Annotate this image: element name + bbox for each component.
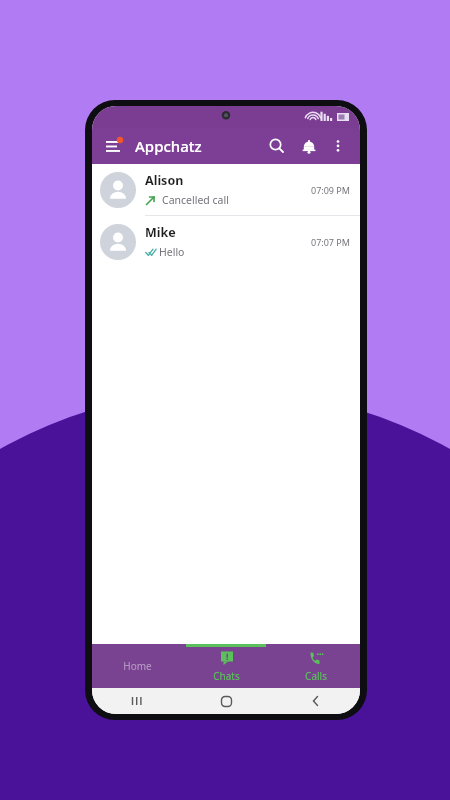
button[interactable]: Back	[271, 688, 360, 714]
button[interactable]: Search	[264, 133, 290, 159]
staticText: 07:07 PM	[311, 236, 350, 248]
button[interactable]: More options	[326, 134, 350, 158]
staticText: Home	[123, 659, 152, 673]
button[interactable]: Alison	[92, 164, 360, 215]
button[interactable]: Open navigation menu	[102, 134, 126, 158]
button[interactable]: Recent apps	[92, 688, 182, 714]
staticText: Alison	[145, 172, 184, 189]
button[interactable]: Chats	[182, 644, 271, 688]
button[interactable]: Home	[182, 688, 271, 714]
button[interactable]: Home	[92, 644, 182, 688]
staticText: Chats	[213, 669, 240, 683]
staticText: Mike	[145, 224, 176, 241]
staticText: Hello	[159, 245, 185, 259]
staticText: 07:09 PM	[311, 184, 350, 196]
button[interactable]: Mike	[92, 216, 360, 267]
staticText: Calls	[305, 669, 327, 683]
button[interactable]: Calls	[271, 644, 360, 688]
button[interactable]: Notifications	[296, 133, 322, 159]
staticText: Cancelled call	[162, 193, 229, 207]
staticText: Appchatz	[135, 136, 202, 156]
